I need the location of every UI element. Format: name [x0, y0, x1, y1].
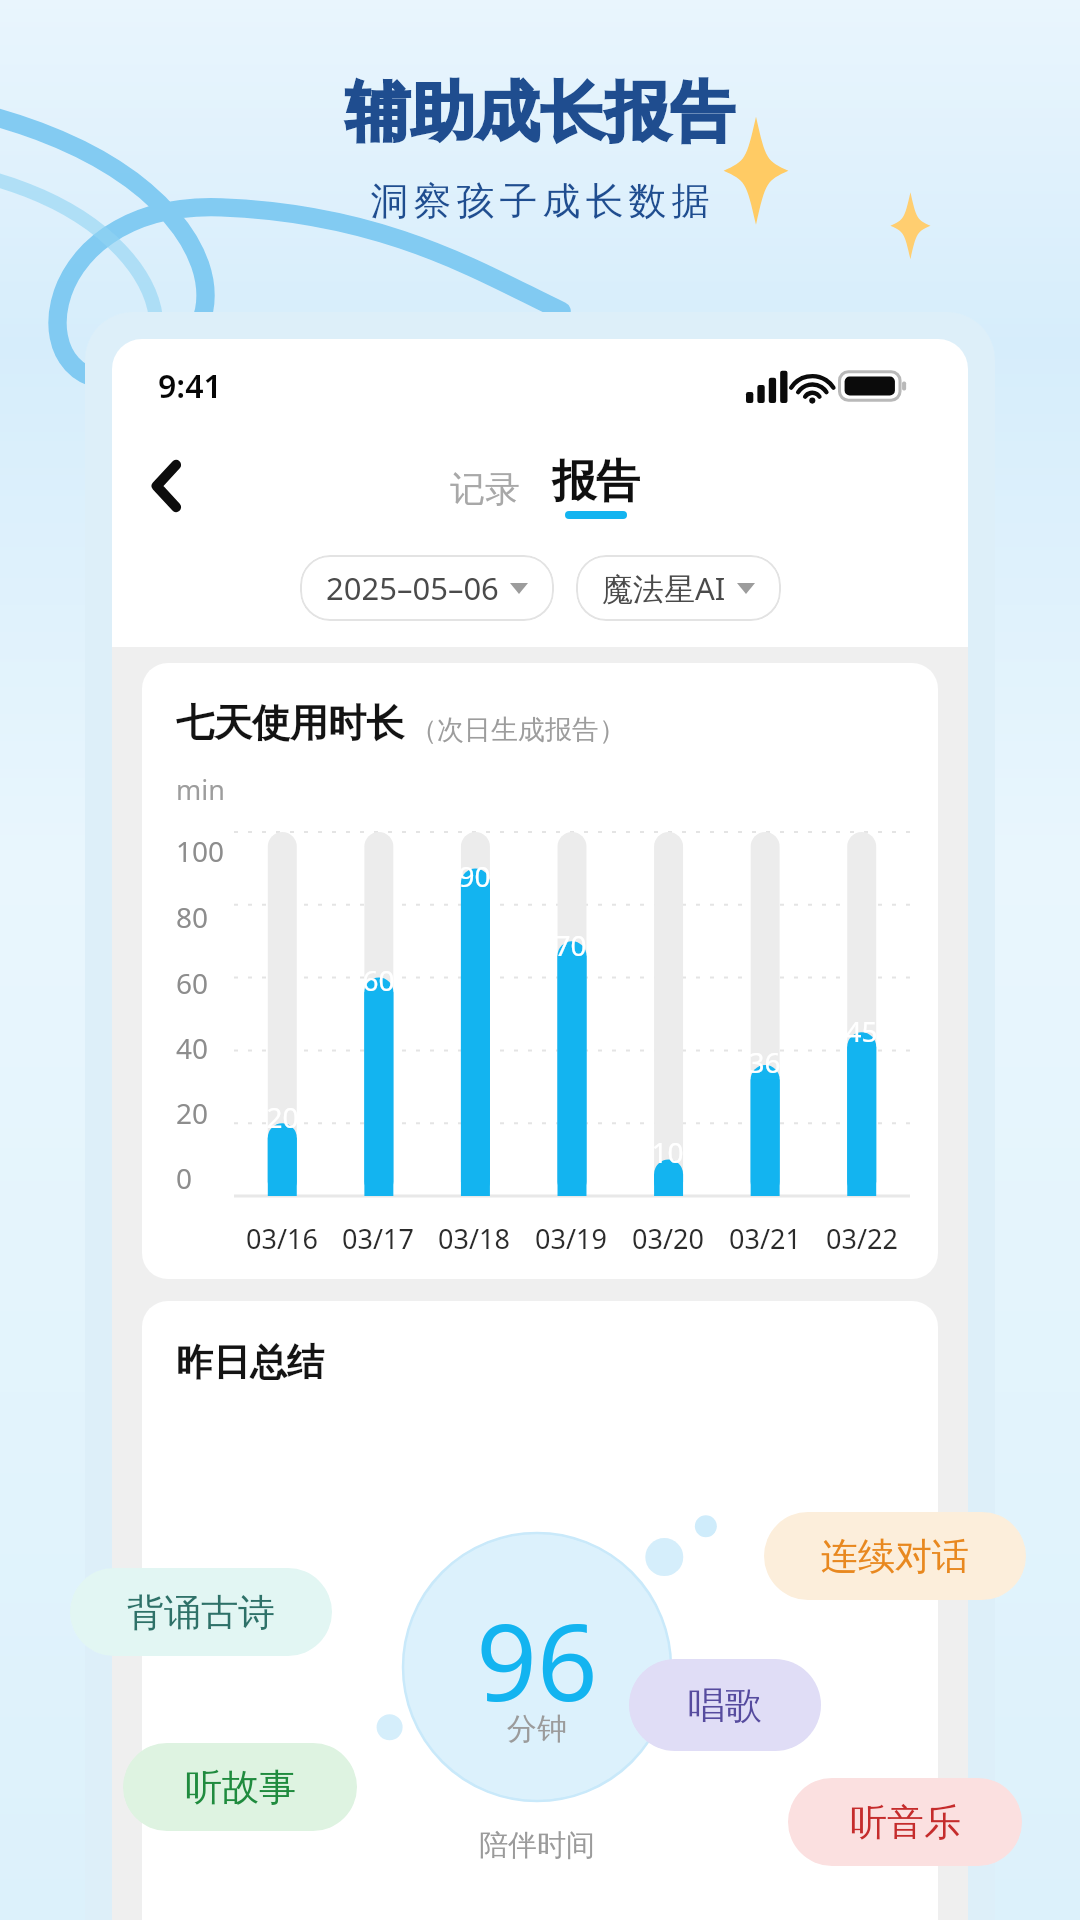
staticText: 听音乐	[850, 1799, 961, 1846]
button[interactable]: 记录	[438, 459, 532, 519]
staticText: 七天使用时长	[176, 699, 404, 747]
staticText: 昨日总结	[176, 1339, 324, 1386]
staticText: 03/16	[246, 1220, 318, 1257]
button[interactable]: 2025–05–06	[300, 555, 554, 621]
staticText: 03/19	[535, 1220, 607, 1257]
staticText: 听故事	[185, 1764, 296, 1811]
staticText: 03/20	[632, 1220, 704, 1257]
staticText: （次日生成报告）	[410, 713, 626, 747]
staticText: 03/21	[729, 1220, 801, 1257]
staticText: 03/22	[826, 1220, 898, 1257]
staticText: 90	[458, 857, 491, 895]
staticText: 辅助成长报告	[345, 72, 735, 153]
staticText: 20	[266, 1098, 299, 1136]
staticText: 记录	[450, 467, 520, 511]
staticText: 03/18	[438, 1220, 510, 1257]
staticText: 陪伴时间	[479, 1827, 595, 1864]
staticText: 报告	[552, 454, 640, 509]
staticText: 36	[748, 1043, 781, 1081]
staticText: 10	[651, 1133, 684, 1171]
button[interactable]: 听故事	[123, 1743, 357, 1831]
staticText: min	[176, 771, 225, 808]
staticText: 分钟	[507, 1710, 567, 1748]
staticText: 70	[554, 926, 587, 964]
staticText: 60	[176, 964, 209, 1002]
staticText: 魔法星AI	[602, 567, 726, 609]
staticText: 40	[176, 1029, 209, 1067]
button[interactable]: 听音乐	[788, 1778, 1022, 1866]
button[interactable]: 返回	[132, 451, 202, 521]
staticText: 96	[476, 1588, 598, 1728]
staticText: 0	[176, 1159, 193, 1197]
staticText: 连续对话	[821, 1533, 969, 1580]
button[interactable]: 魔法星AI	[576, 555, 781, 621]
button[interactable]: 报告	[544, 454, 648, 519]
staticText: 唱歌	[688, 1682, 762, 1729]
button[interactable]: 连续对话	[764, 1512, 1026, 1600]
staticText: 100	[176, 832, 225, 870]
button[interactable]: 背诵古诗	[70, 1568, 332, 1656]
staticText: 20	[176, 1094, 209, 1132]
staticText: 45	[845, 1012, 878, 1050]
staticText: 80	[176, 898, 209, 936]
staticText: 03/17	[342, 1220, 414, 1257]
staticText: 60	[362, 961, 395, 999]
button[interactable]: 唱歌	[629, 1659, 821, 1751]
staticText: 背诵古诗	[127, 1589, 275, 1636]
staticText: 9:41	[158, 364, 222, 408]
staticText: 2025–05–06	[326, 567, 499, 609]
staticText: 洞察孩子成长数据	[368, 177, 712, 225]
